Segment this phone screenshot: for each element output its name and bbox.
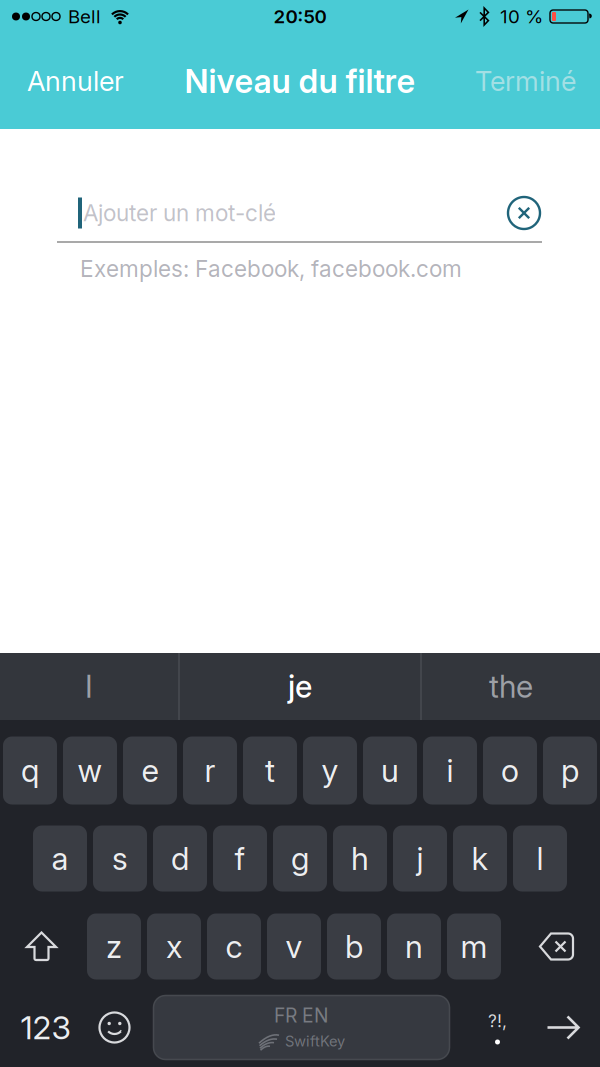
staticText: n [405, 927, 423, 965]
staticText: l [536, 839, 543, 877]
button[interactable]: the [422, 653, 600, 720]
staticText: I [85, 668, 93, 705]
staticText: Terminé [475, 64, 576, 98]
staticText: c [225, 927, 242, 965]
button[interactable]: e [123, 736, 177, 804]
button[interactable]: q [3, 736, 57, 804]
staticText: FR EN [274, 1004, 329, 1027]
button[interactable]: Maj [27, 932, 56, 960]
staticText: je [288, 668, 312, 705]
staticText: j [416, 839, 423, 877]
staticText: Bell [68, 5, 101, 28]
staticText: ?!, [488, 1010, 507, 1031]
staticText: Ajouter un mot-clé [83, 199, 276, 227]
button[interactable]: k [453, 825, 507, 891]
button[interactable]: Terminé [475, 64, 600, 98]
button[interactable]: p [543, 736, 597, 804]
button[interactable]: d [153, 825, 207, 891]
button[interactable]: 123 [1, 995, 89, 1059]
button[interactable]: je [180, 653, 420, 720]
staticText: r [204, 751, 215, 789]
button[interactable]: f [213, 825, 267, 891]
button[interactable]: I [0, 653, 178, 720]
staticText: y [321, 751, 338, 789]
staticText: w [77, 751, 102, 789]
staticText: Niveau du filtre [184, 61, 415, 101]
button[interactable]: c [207, 913, 261, 979]
staticText: u [381, 751, 399, 789]
staticText: e [141, 751, 158, 789]
staticText: a [51, 839, 68, 877]
button[interactable]: s [93, 825, 147, 891]
button[interactable]: Espace [153, 995, 449, 1059]
staticText: o [501, 751, 519, 789]
staticText: 123 [20, 1008, 70, 1047]
button[interactable]: i [423, 736, 477, 804]
button[interactable]: a [33, 825, 87, 891]
staticText: 10 % [500, 5, 543, 28]
staticText: t [265, 751, 275, 789]
button[interactable]: b [327, 913, 381, 979]
button[interactable]: h [333, 825, 387, 891]
button[interactable]: z [87, 913, 141, 979]
staticText: Annuler [27, 64, 124, 98]
staticText: SwiftKey [285, 1032, 345, 1050]
button[interactable]: Effacer [508, 197, 540, 229]
staticText: p [561, 751, 579, 789]
button[interactable]: ?!, [466, 995, 528, 1059]
button[interactable]: t [243, 736, 297, 804]
staticText: q [21, 751, 39, 789]
button[interactable]: n [387, 913, 441, 979]
staticText: b [345, 927, 363, 965]
button[interactable]: m [447, 913, 501, 979]
staticText: x [166, 927, 182, 965]
staticText: h [351, 839, 369, 877]
button[interactable]: j [393, 825, 447, 891]
staticText: Exemples: Facebook, facebook.com [80, 255, 462, 282]
button[interactable]: g [273, 825, 327, 891]
button[interactable]: r [183, 736, 237, 804]
staticText: the [489, 668, 533, 705]
button[interactable]: Retour [547, 1016, 579, 1038]
button[interactable]: o [483, 736, 537, 804]
button[interactable]: Émoticônes [99, 1012, 129, 1042]
button[interactable]: Supprimer [540, 933, 573, 959]
staticText: g [291, 839, 309, 877]
staticText: f [234, 839, 245, 877]
button[interactable]: w [63, 736, 117, 804]
button[interactable]: l [513, 825, 567, 891]
staticText: s [112, 839, 128, 877]
button[interactable]: Annuler [0, 64, 124, 98]
staticText: d [171, 839, 189, 877]
staticText: m [460, 927, 487, 965]
button[interactable]: x [147, 913, 201, 979]
button[interactable]: y [303, 736, 357, 804]
button[interactable]: v [267, 913, 321, 979]
staticText: i [446, 751, 453, 789]
staticText: k [471, 839, 488, 877]
staticText: z [106, 927, 122, 965]
staticText: v [285, 927, 302, 965]
button[interactable]: u [363, 736, 417, 804]
staticText: 20:50 [273, 5, 326, 28]
